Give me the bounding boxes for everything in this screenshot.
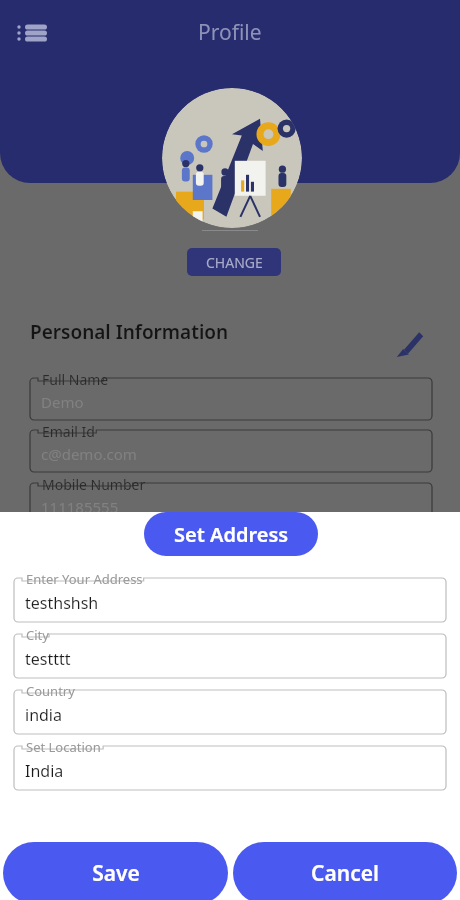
button[interactable]: Menu (16, 18, 50, 48)
button[interactable]: CHANGE (187, 248, 281, 276)
button[interactable]: Set Location (14, 746, 446, 790)
staticText: Set Address (174, 521, 289, 548)
button[interactable]: Country (14, 690, 446, 734)
button[interactable]: Set Address (144, 512, 318, 556)
staticText: India (25, 760, 64, 782)
staticText: Cancel (311, 859, 379, 888)
staticText: Mobile Number (42, 475, 146, 494)
staticText: CHANGE (206, 253, 263, 272)
staticText: Email Id (42, 422, 95, 441)
button[interactable]: Edit (388, 325, 428, 365)
staticText: testhshsh (25, 592, 99, 614)
button[interactable]: Save (3, 842, 228, 900)
button[interactable]: City (14, 634, 446, 678)
staticText: Profile (198, 18, 262, 47)
staticText: City (26, 626, 49, 644)
staticText: Demo (41, 392, 84, 412)
staticText: Save (92, 859, 140, 888)
staticText: Personal Information (30, 319, 229, 345)
staticText: Set Location (26, 738, 101, 756)
staticText: india (25, 704, 62, 726)
button[interactable]: Enter Your Address (14, 578, 446, 622)
staticText: Enter Your Address (26, 570, 143, 588)
staticText: 111185555 (41, 497, 119, 517)
staticText: testttt (25, 648, 71, 670)
staticText: Full Name (42, 370, 109, 389)
staticText: Country (26, 682, 75, 700)
button[interactable]: Cancel (233, 842, 457, 900)
staticText: c@demo.com (41, 444, 137, 464)
